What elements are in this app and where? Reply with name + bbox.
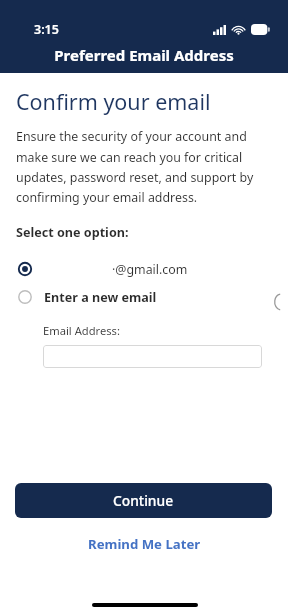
- button[interactable]: Remind Me Later: [0, 531, 288, 556]
- staticText: Remind Me Later: [88, 535, 201, 553]
- staticText: 3:15: [34, 21, 59, 38]
- staticText: Preferred Email Address: [54, 45, 234, 65]
- staticText: Enter a new email: [44, 289, 157, 306]
- staticText: Select one option:: [16, 224, 129, 241]
- staticText: Continue: [113, 491, 174, 510]
- button[interactable]: Continue: [15, 483, 272, 518]
- staticText: Email Address:: [43, 323, 120, 338]
- button[interactable]: Enter a new email: [0, 284, 288, 310]
- staticText: Ensure the security of your account and …: [16, 128, 274, 205]
- button[interactable]: Email Address input: [43, 345, 262, 368]
- staticText: ·@gmail.com: [112, 261, 188, 278]
- button[interactable]: ·@gmail.com: [0, 256, 288, 282]
- staticText: Confirm your email: [16, 87, 211, 116]
